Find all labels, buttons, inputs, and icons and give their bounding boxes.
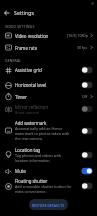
button[interactable]: Add watermark	[0, 120, 97, 141]
staticText: Video resolution	[15, 33, 49, 39]
staticText: Timer	[15, 94, 27, 100]
button[interactable]: Frame rate	[0, 42, 97, 53]
button[interactable]: Settings	[0, 8, 97, 18]
button[interactable]: Timer	[0, 91, 97, 102]
button[interactable]: RESTORE DEFAULTS	[29, 199, 68, 210]
button[interactable]: Location tag	[0, 146, 97, 163]
button[interactable]: Horizontal level	[0, 79, 97, 91]
staticText: location information.	[15, 158, 51, 163]
staticText: Tag photos and videos with	[15, 153, 62, 158]
staticText: Frame rate	[15, 45, 38, 51]
staticText: Assistive grid	[15, 67, 42, 73]
staticText: Settings	[14, 10, 34, 17]
staticText: Mirror reflection	[15, 104, 49, 110]
staticText: Horizontal level	[15, 82, 47, 88]
button[interactable]: Mirror reflection	[0, 103, 97, 115]
staticText: (front camera)	[15, 110, 39, 115]
staticText: extra convenience.	[15, 189, 47, 194]
staticText: [16:9] 1080p	[67, 33, 88, 38]
staticText: watermark to photos taken with	[15, 131, 70, 136]
staticText: Off	[82, 94, 88, 99]
staticText: Add a movable shutter button for	[15, 184, 72, 189]
staticText: Mute	[15, 168, 26, 174]
button[interactable]: Assistive grid	[0, 64, 97, 76]
button[interactable]: Video resolution	[0, 30, 97, 41]
staticText: RESTORE DEFAULTS	[32, 203, 65, 207]
staticText: Floating shutter	[15, 178, 48, 184]
staticText: Add watermark	[15, 120, 47, 126]
staticText: VIDEO SETTINGS	[5, 24, 35, 29]
button[interactable]: Mute	[0, 166, 97, 176]
staticText: the rear camera.	[15, 136, 43, 141]
staticText: GENERAL	[5, 58, 22, 63]
button[interactable]: Floating shutter	[0, 177, 97, 195]
staticText: Location tag	[15, 147, 41, 153]
staticText: 30 fps	[77, 45, 88, 50]
staticText: Automatically add an Honor	[15, 126, 63, 131]
